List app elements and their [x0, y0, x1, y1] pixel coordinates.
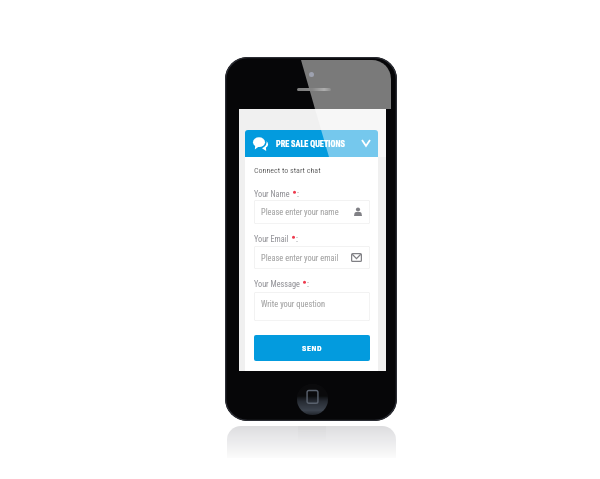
staticText: SEND [302, 344, 323, 353]
staticText: : [297, 189, 299, 199]
button[interactable]: SEND [254, 335, 370, 361]
button[interactable]: Please enter your email [254, 246, 370, 269]
staticText: Your Email [254, 234, 289, 244]
staticText: : [307, 279, 309, 289]
staticText: Connect to start chat [254, 166, 321, 175]
button[interactable]: Write your question [254, 292, 370, 321]
button[interactable]: PRE SALE QUETIONS [245, 130, 378, 157]
staticText: PRE SALE QUETIONS [276, 139, 345, 149]
staticText: Your Message [254, 279, 300, 289]
staticText: Write your question [261, 299, 326, 309]
button[interactable]: Please enter your name [254, 200, 370, 224]
staticText: Please enter your name [261, 207, 339, 217]
staticText: : [296, 234, 298, 244]
button[interactable]: Collapse chat panel [356, 130, 376, 157]
staticText: Please enter your email [261, 253, 339, 263]
staticText: Your Name [254, 189, 290, 199]
